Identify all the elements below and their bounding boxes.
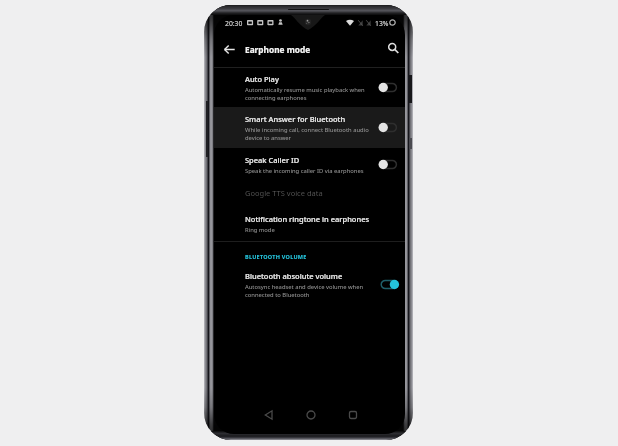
button[interactable]: Recents [342, 404, 364, 426]
staticText: Auto Play [245, 74, 279, 84]
staticText: Earphone mode [245, 44, 311, 55]
staticText: 13% [375, 19, 389, 28]
staticText: Speak Caller ID [245, 155, 300, 165]
button[interactable]: Switch off [380, 158, 400, 171]
staticText: While incoming call, connect Bluetooth a… [245, 126, 369, 141]
staticText: Google TTS voice data [245, 188, 323, 198]
button[interactable]: Search [381, 36, 405, 60]
button[interactable]: Speak Caller ID [214, 146, 405, 183]
button[interactable]: Google TTS voice data [214, 179, 405, 207]
staticText: Bluetooth absolute volume [245, 271, 343, 281]
staticText: Smart Answer for Bluetooth [245, 114, 346, 124]
button[interactable]: Back [258, 404, 280, 426]
button[interactable]: Bluetooth absolute volume [214, 265, 405, 304]
button[interactable]: Switch on [380, 278, 400, 291]
button[interactable]: Back [217, 37, 241, 61]
staticText: Ring mode [245, 226, 275, 234]
staticText: BLUETOOTH VOLUME [245, 253, 307, 260]
button[interactable]: Switch off [380, 121, 400, 134]
staticText: Notification ringtone in earphones [245, 214, 370, 224]
staticText: Automatically resume music playback when… [245, 86, 365, 101]
button[interactable]: Auto Play [214, 68, 405, 107]
button[interactable]: Notification ringtone in earphones [214, 210, 405, 242]
button[interactable]: Home [300, 404, 322, 426]
staticText: 20:30 [225, 19, 243, 28]
button[interactable]: Switch off [380, 81, 400, 94]
staticText: Autosync headset and device volume when … [245, 283, 364, 298]
button[interactable]: Smart Answer for Bluetooth [214, 107, 405, 148]
staticText: Speak the incoming caller ID via earphon… [245, 167, 364, 175]
